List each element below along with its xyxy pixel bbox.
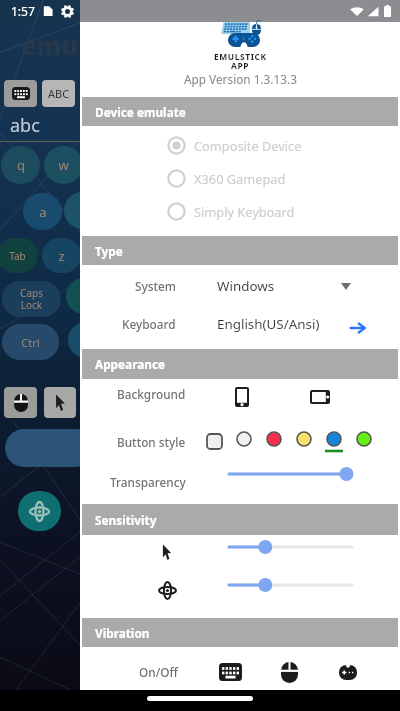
staticText: 1:57 [11,3,35,19]
button[interactable]: System [80,273,400,299]
button[interactable]: Red button style [259,426,289,456]
staticText: Transparency [110,474,186,490]
button[interactable]: Touchpad [5,429,95,467]
button[interactable]: Pointer [44,387,76,418]
staticText: Caps Lock [20,286,43,312]
button[interactable]: z [42,238,81,273]
button[interactable]: Choose keyboard layout [344,315,372,341]
button[interactable]: q [1,146,40,184]
button[interactable]: ABC [42,80,75,107]
button[interactable]: a [23,193,62,230]
staticText: Vibration [95,625,150,641]
button[interactable]: Green button style [349,426,379,456]
button[interactable]: Ctrl [2,324,59,360]
button[interactable]: Mouse vibration [275,658,303,686]
button[interactable]: Keyboard [80,311,400,337]
button[interactable]: Choose system [333,273,359,299]
staticText: APP [231,60,250,71]
staticText: Simply Keyboard [194,203,295,220]
staticText: Composite Device [194,137,302,154]
button[interactable]: Slider [222,537,359,557]
button[interactable]: Gamepad vibration [334,658,362,686]
button[interactable]: Slider [222,464,359,484]
button[interactable]: Slider [222,575,359,595]
button[interactable]: Gyro mode [18,491,61,531]
button[interactable]: On/Off [122,660,194,684]
staticText: z [58,247,65,265]
staticText: Background [117,386,186,402]
button[interactable] [66,278,108,314]
button[interactable]: s [64,192,103,229]
staticText: Keyboard [122,316,176,332]
button[interactable]: Portrait background [227,382,257,412]
staticText: abc [10,113,40,138]
staticText: Appearance [95,356,166,372]
staticText: emuls [21,28,100,62]
button[interactable]: Landscape background [305,382,335,412]
button[interactable]: Simply Keyboard [80,195,400,228]
button[interactable]: Keyboard vibration [216,658,244,686]
staticText: Type [95,243,123,259]
button[interactable]: Square button style [199,428,229,454]
staticText: w [58,156,69,174]
button[interactable]: w [44,146,83,184]
button[interactable]: Tab [0,238,38,273]
staticText: EMULSTICK [214,51,267,62]
button[interactable]: Yellow button style [289,426,319,456]
staticText: a [39,203,47,221]
staticText: q [17,156,25,174]
staticText: ABC [48,86,70,101]
button[interactable]: Caps Lock [2,281,61,317]
button[interactable]: Keyboard mode [4,80,37,107]
staticText: App Version 1.3.13.3 [184,71,297,87]
staticText: On/Off [139,664,178,680]
staticText: Windows [217,277,275,295]
button[interactable]: Blue button style [319,426,349,456]
staticText: X360 Gamepad [194,170,286,187]
button[interactable]: X360 Gamepad [80,162,400,195]
button[interactable]: Mouse [4,387,37,418]
button[interactable] [68,322,110,358]
staticText: System [135,278,176,294]
staticText: Device emulate [95,104,186,120]
staticText: Tab [9,249,26,263]
staticText: Button style [117,434,186,450]
button[interactable]: White button style [229,426,259,456]
staticText: Ctrl [21,335,40,350]
staticText: English(US/Ansi) [217,315,320,333]
staticText: Sensitivity [95,512,157,528]
button[interactable]: Composite Device [80,129,400,162]
